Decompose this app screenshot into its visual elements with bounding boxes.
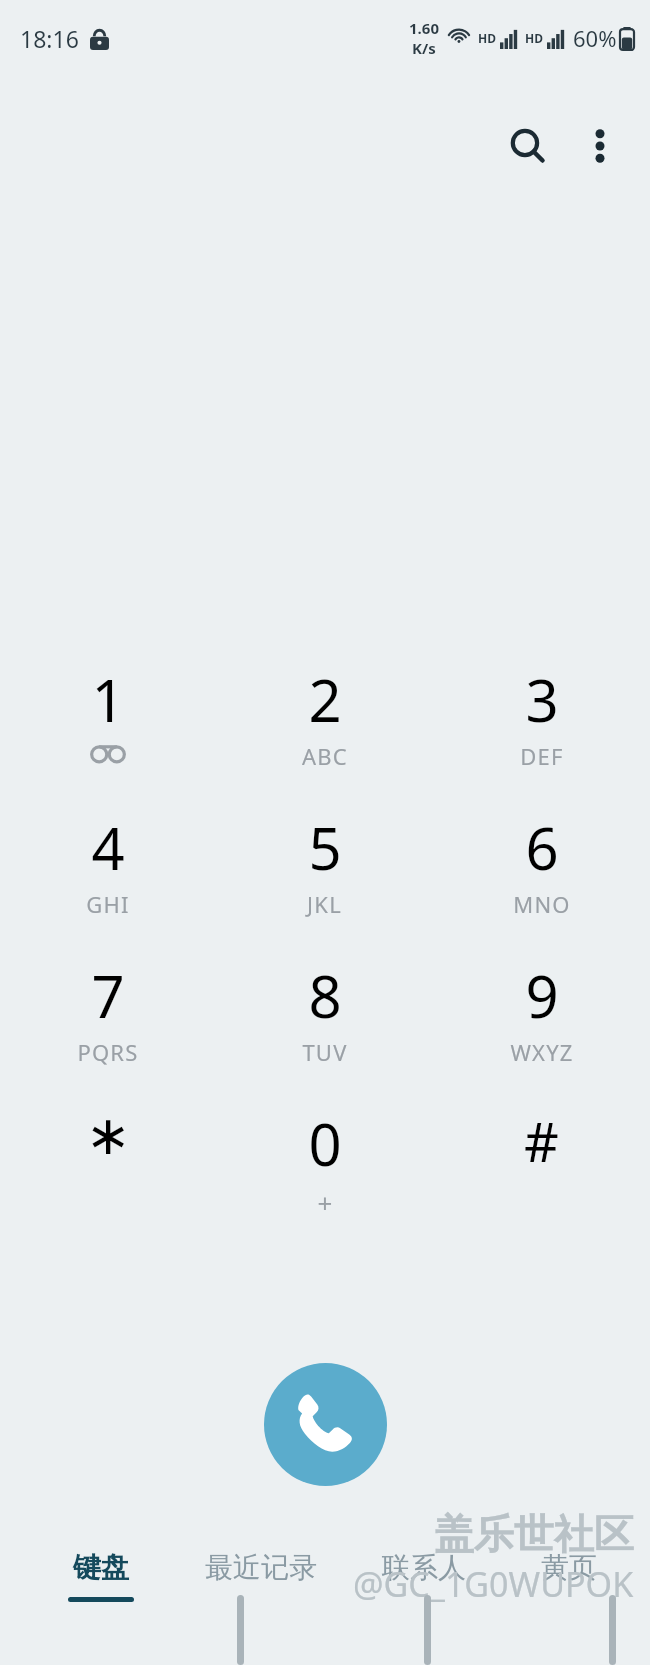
staticText: 7 <box>91 956 125 1035</box>
staticText: 最近记录 <box>205 1550 317 1585</box>
staticText: 1.60 <box>409 18 439 38</box>
staticText: PQRS <box>77 1037 139 1067</box>
button[interactable]: More options <box>570 116 630 176</box>
staticText: WXYZ <box>510 1037 574 1067</box>
button[interactable]: 最近记录 <box>172 1540 349 1665</box>
staticText: K/s <box>412 38 436 58</box>
staticText: 9 <box>525 956 559 1035</box>
staticText: 6 <box>525 808 559 887</box>
staticText: 黄页 <box>541 1550 597 1585</box>
staticText: GHI <box>86 889 130 919</box>
staticText: HD <box>525 30 543 46</box>
staticText: 盖乐世社区 <box>434 1509 634 1559</box>
staticText: 8 <box>308 956 342 1035</box>
staticText: 2 <box>308 660 342 739</box>
button[interactable]: 0 <box>216 1104 433 1252</box>
staticText: DEF <box>520 741 564 771</box>
button[interactable]: 键盘 <box>30 1540 172 1665</box>
staticText: MNO <box>513 889 571 919</box>
staticText: 1 <box>91 660 125 739</box>
button[interactable]: 6 <box>433 808 650 956</box>
staticText: # <box>524 1104 559 1178</box>
button[interactable]: 7 <box>0 956 216 1104</box>
staticText: 5 <box>308 808 342 887</box>
staticText: + <box>317 1185 334 1220</box>
staticText: HD <box>478 30 496 46</box>
button[interactable]: 黄页 <box>498 1540 640 1665</box>
button[interactable]: Search <box>486 104 570 188</box>
staticText: 18:16 <box>20 23 79 54</box>
button[interactable]: Call <box>264 1363 387 1486</box>
button[interactable]: 1 <box>0 660 216 808</box>
staticText: 键盘 <box>73 1550 129 1585</box>
staticText: ∗ <box>85 1104 131 1167</box>
button[interactable]: 联系人 <box>349 1540 498 1665</box>
staticText: JKL <box>307 889 342 919</box>
staticText: @GC_1G0WUPOK <box>353 1561 634 1607</box>
staticText: 联系人 <box>382 1550 466 1585</box>
button[interactable]: # <box>433 1104 650 1252</box>
staticText: TUV <box>302 1037 348 1067</box>
button[interactable]: 8 <box>216 956 433 1104</box>
staticText: ABC <box>302 741 348 771</box>
button[interactable]: ∗ <box>0 1104 216 1252</box>
button[interactable]: 3 <box>433 660 650 808</box>
button[interactable]: 9 <box>433 956 650 1104</box>
staticText: 3 <box>525 660 559 739</box>
button[interactable]: 4 <box>0 808 216 956</box>
staticText: 0 <box>308 1104 342 1183</box>
staticText: 4 <box>91 808 125 887</box>
button[interactable]: 2 <box>216 660 433 808</box>
button[interactable]: 5 <box>216 808 433 956</box>
staticText: 60% <box>573 23 617 53</box>
